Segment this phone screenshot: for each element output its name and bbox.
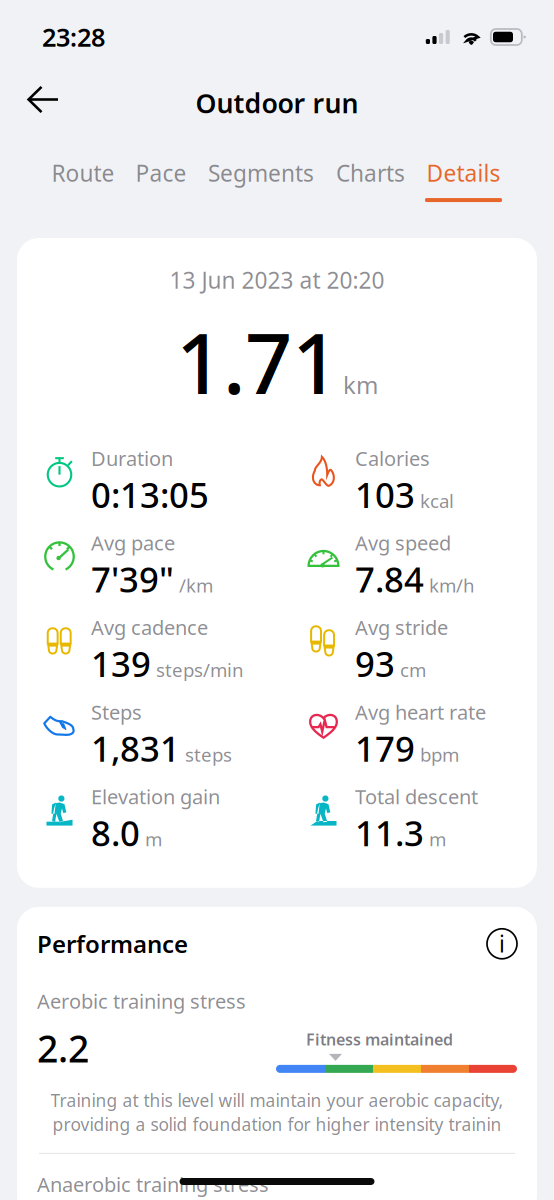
staticText: Avg stride	[355, 614, 448, 641]
staticText: 23:28	[42, 20, 105, 54]
staticText: 11.3	[355, 810, 424, 856]
staticText: Route	[51, 158, 114, 188]
staticText: /km	[179, 573, 213, 598]
staticText: 7'39"	[91, 556, 174, 602]
staticText: steps	[185, 742, 232, 767]
staticText: 179	[355, 725, 415, 771]
staticText: Details	[426, 158, 500, 188]
staticText: kcal	[420, 488, 454, 513]
staticText: Calories	[355, 445, 430, 471]
staticText: Avg cadence	[91, 614, 208, 641]
staticText: Aerobic training stress	[37, 988, 246, 1014]
button[interactable]: Segments	[197, 136, 325, 202]
staticText: Charts	[336, 158, 405, 188]
staticText: 1.71	[176, 307, 339, 417]
staticText: Avg pace	[91, 529, 175, 556]
staticText: Segments	[208, 158, 314, 188]
staticText: Pace	[135, 158, 186, 188]
staticText: 2.2	[37, 1023, 89, 1073]
staticText: Avg heart rate	[355, 699, 486, 725]
staticText: 0:13:05	[91, 471, 209, 517]
staticText: 139	[91, 641, 151, 687]
staticText: Duration	[91, 445, 173, 471]
staticText: Performance	[37, 928, 188, 960]
staticText: Training at this level will maintain you…	[50, 1089, 503, 1112]
staticText: Avg speed	[355, 529, 451, 556]
staticText: m	[145, 827, 162, 851]
staticText: steps/min	[156, 657, 244, 682]
staticText: i	[499, 929, 505, 959]
staticText: 7.84	[355, 556, 424, 602]
staticText: Elevation gain	[91, 783, 220, 810]
button[interactable]: Charts	[325, 136, 416, 202]
button[interactable]: Pace	[125, 136, 197, 202]
staticText: 8.0	[91, 810, 140, 856]
staticText: bpm	[420, 742, 459, 767]
staticText: 1,831	[91, 725, 180, 771]
staticText: Total descent	[355, 783, 478, 810]
button[interactable]: Info	[487, 929, 517, 959]
staticText: km	[343, 369, 378, 401]
staticText: cm	[400, 657, 426, 682]
staticText: providing a solid foundation for higher …	[52, 1113, 501, 1136]
staticText: 103	[355, 471, 415, 517]
button[interactable]: Details	[416, 136, 511, 202]
button[interactable]: Back	[14, 72, 72, 133]
staticText: Anaerobic training stress	[37, 1171, 269, 1197]
staticText: km/h	[429, 573, 475, 598]
staticText: m	[429, 827, 446, 851]
button[interactable]: Route	[41, 136, 125, 202]
staticText: Outdoor run	[195, 85, 358, 121]
staticText: 13 Jun 2023 at 20:20	[169, 265, 384, 295]
staticText: Steps	[91, 699, 142, 725]
staticText: Fitness maintained	[306, 1029, 453, 1050]
staticText: 93	[355, 641, 395, 687]
